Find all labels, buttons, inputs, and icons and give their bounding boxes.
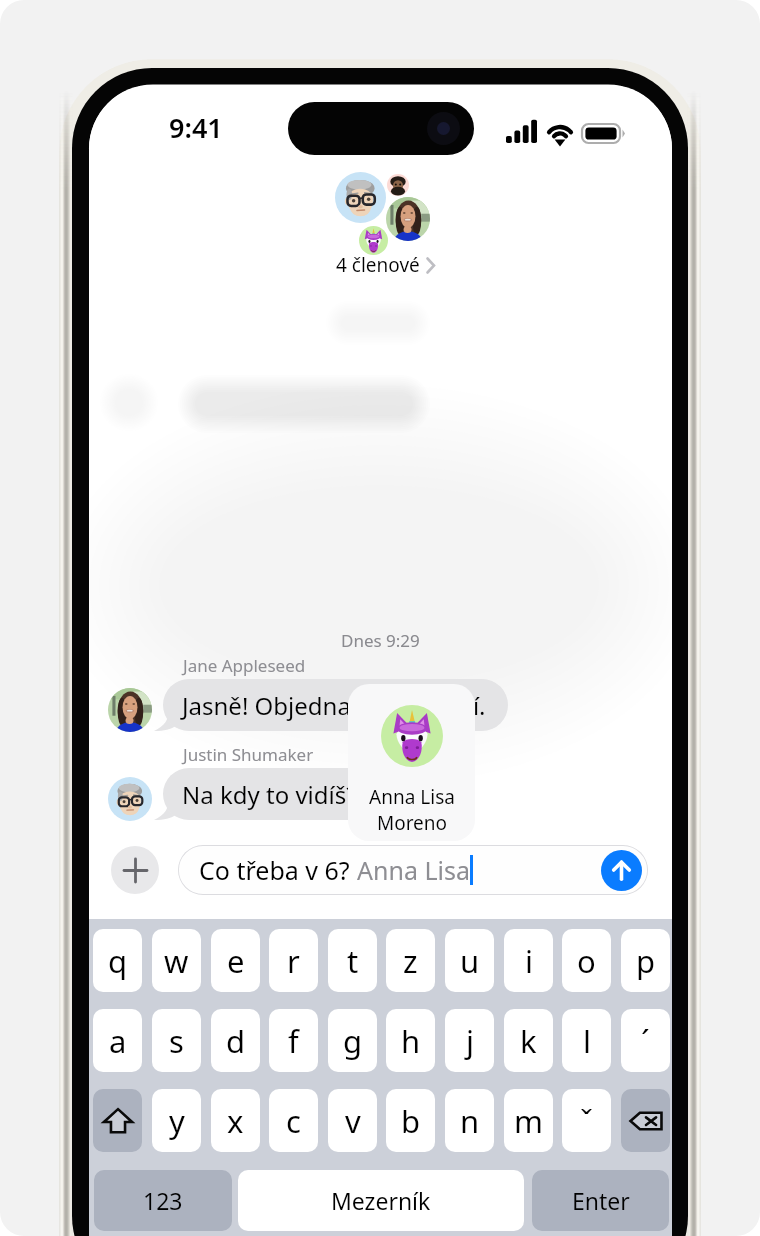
button[interactable]: k — [504, 1009, 553, 1072]
staticText: f — [288, 1020, 299, 1062]
staticText: i — [525, 940, 533, 982]
button[interactable]: c — [269, 1089, 318, 1152]
button[interactable]: Shift — [93, 1089, 142, 1152]
button[interactable]: o — [562, 929, 611, 992]
staticText: Anna Lisa — [357, 853, 470, 887]
staticText: ´ — [641, 1020, 650, 1062]
button[interactable]: m — [504, 1089, 553, 1152]
button[interactable] — [335, 172, 431, 256]
staticText: Anna Lisa Moreno — [369, 784, 455, 836]
staticText: u — [460, 940, 480, 982]
staticText: e — [227, 940, 245, 982]
staticText: d — [226, 1020, 246, 1062]
staticText: Co třeba v 6? — [199, 853, 357, 887]
button[interactable]: Jasně! Objednali jídlo a pití. — [163, 679, 508, 731]
staticText: r — [287, 940, 300, 982]
staticText: n — [460, 1100, 480, 1142]
button[interactable]: e — [211, 929, 260, 992]
button[interactable]: Na kdy to vidíš? — [163, 768, 463, 820]
staticText: Mezerník — [331, 1185, 431, 1216]
button[interactable]: n — [445, 1089, 494, 1152]
button[interactable]: Enter — [532, 1170, 669, 1231]
button[interactable]: w — [152, 929, 201, 992]
staticText: s — [169, 1020, 184, 1062]
staticText: Jane Appleseed — [183, 654, 306, 677]
button[interactable]: i — [504, 929, 553, 992]
staticText: Jasně! Objednali jídlo a pití. — [182, 689, 486, 722]
button[interactable]: x — [211, 1089, 260, 1152]
button[interactable]: a — [93, 1009, 142, 1072]
staticText: b — [401, 1100, 421, 1142]
button[interactable]: Add attachment — [111, 846, 159, 894]
staticText: p — [636, 940, 656, 982]
staticText: z — [403, 940, 418, 982]
button[interactable]: t — [328, 929, 377, 992]
button[interactable]: h — [386, 1009, 435, 1072]
staticText: x — [227, 1100, 244, 1142]
staticText: Enter — [572, 1185, 630, 1216]
button[interactable]: 123 — [94, 1170, 232, 1231]
button[interactable]: ´ — [621, 1009, 670, 1072]
staticText: l — [583, 1020, 591, 1062]
staticText: y — [169, 1100, 185, 1142]
staticText: ˇ — [580, 1100, 593, 1142]
button[interactable]: q — [93, 929, 142, 992]
button[interactable]: Mezerník — [238, 1170, 524, 1231]
staticText: c — [286, 1100, 301, 1142]
button[interactable]: d — [211, 1009, 260, 1072]
button[interactable]: j — [445, 1009, 494, 1072]
button[interactable]: u — [445, 929, 494, 992]
staticText: v — [345, 1100, 361, 1142]
staticText: a — [109, 1020, 127, 1062]
button[interactable]: ˇ — [562, 1089, 611, 1152]
button[interactable]: l — [562, 1009, 611, 1072]
button[interactable]: b — [386, 1089, 435, 1152]
staticText: Justin Shumaker — [183, 743, 314, 766]
staticText: 123 — [143, 1185, 183, 1216]
button[interactable]: r — [269, 929, 318, 992]
staticText: Na kdy to vidíš? — [182, 778, 357, 811]
button[interactable]: p — [621, 929, 670, 992]
staticText: m — [514, 1100, 543, 1142]
button[interactable]: Anna Lisa Moreno — [348, 684, 475, 841]
staticText: t — [347, 940, 359, 982]
staticText: q — [108, 940, 128, 982]
button[interactable]: v — [328, 1089, 377, 1152]
button[interactable]: g — [328, 1009, 377, 1072]
staticText: w — [164, 940, 189, 982]
staticText: h — [401, 1020, 421, 1062]
button[interactable]: z — [386, 929, 435, 992]
staticText: 4 členové — [336, 252, 420, 278]
staticText: k — [520, 1020, 537, 1062]
button[interactable]: y — [152, 1089, 201, 1152]
button[interactable]: f — [269, 1009, 318, 1072]
button[interactable]: Co třeba v 6? — [178, 845, 648, 895]
button[interactable]: s — [152, 1009, 201, 1072]
button[interactable]: Send — [601, 850, 642, 891]
staticText: 9:41 — [169, 109, 223, 146]
staticText: Dnes 9:29 — [341, 629, 420, 652]
button[interactable]: Backspace — [621, 1089, 670, 1152]
staticText: j — [466, 1020, 474, 1062]
staticText: g — [343, 1020, 363, 1062]
staticText: o — [577, 940, 596, 982]
button[interactable]: 4 členové — [94, 251, 672, 279]
